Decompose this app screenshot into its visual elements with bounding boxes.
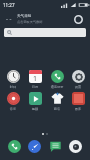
- staticText: 1: [33, 74, 38, 83]
- staticText: 点击获取天气数据: [17, 20, 43, 24]
- staticText: 视频: [24, 107, 46, 111]
- button[interactable]: 设置: [68, 70, 88, 89]
- staticText: 时钟: [2, 85, 24, 89]
- staticText: 图库: [68, 107, 88, 111]
- staticText: 商店: [46, 107, 68, 111]
- button[interactable]: 图库: [68, 92, 88, 111]
- staticText: 天气未知: [17, 14, 32, 19]
- staticText: 日历: [24, 85, 46, 89]
- staticText: - -: [6, 15, 12, 23]
- button[interactable]: 音乐: [2, 92, 24, 111]
- button[interactable]: 时钟: [2, 70, 24, 89]
- button[interactable]: [4, 28, 86, 37]
- button[interactable]: 1: [24, 70, 46, 89]
- button[interactable]: 视频: [24, 92, 46, 111]
- button[interactable]: 通话记录: [46, 70, 68, 89]
- button[interactable]: - -: [6, 10, 84, 28]
- button[interactable]: Messages: [47, 138, 64, 155]
- button[interactable]: Camera: [67, 138, 84, 155]
- staticText: 音乐: [2, 107, 24, 111]
- staticText: 通话记录: [46, 85, 68, 89]
- button[interactable]: Refresh weather: [72, 13, 84, 25]
- staticText: 11:27: [3, 2, 15, 8]
- button[interactable]: Phone: [6, 138, 23, 155]
- staticText: 设置: [68, 85, 88, 89]
- button[interactable]: Browser: [26, 138, 43, 155]
- button[interactable]: 商店: [46, 92, 68, 111]
